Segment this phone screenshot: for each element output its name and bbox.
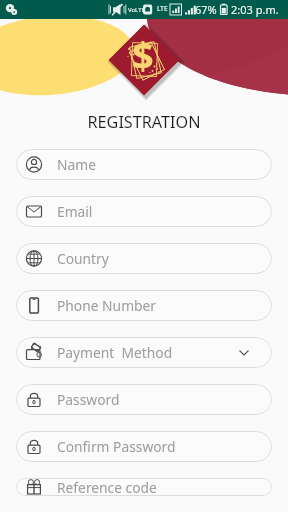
staticText: Email [57,202,93,221]
staticText: 67% [195,2,217,17]
button[interactable]: Confirm Password [16,431,272,462]
button[interactable]: Phone Number [16,290,272,321]
staticText: Name [57,155,96,174]
button[interactable]: Email [16,196,272,227]
staticText: $ [132,29,154,81]
button[interactable]: Name [16,149,272,180]
button[interactable]: Payment Method [16,337,272,368]
staticText: Country [57,249,109,268]
button[interactable]: Reference code [16,478,272,496]
staticText: Confirm Password [57,437,176,456]
staticText: VoLTE [128,6,145,14]
staticText: Payment Method [57,343,173,362]
staticText: Phone Number [57,296,156,315]
staticText: Password [57,390,120,409]
staticText: Reference code [57,478,157,496]
staticText: REGISTRATION [0,111,288,133]
button[interactable]: Country [16,243,272,274]
button[interactable]: Password [16,384,272,415]
staticText: LTE [157,4,168,13]
staticText: 2:03 p.m. [231,2,279,17]
